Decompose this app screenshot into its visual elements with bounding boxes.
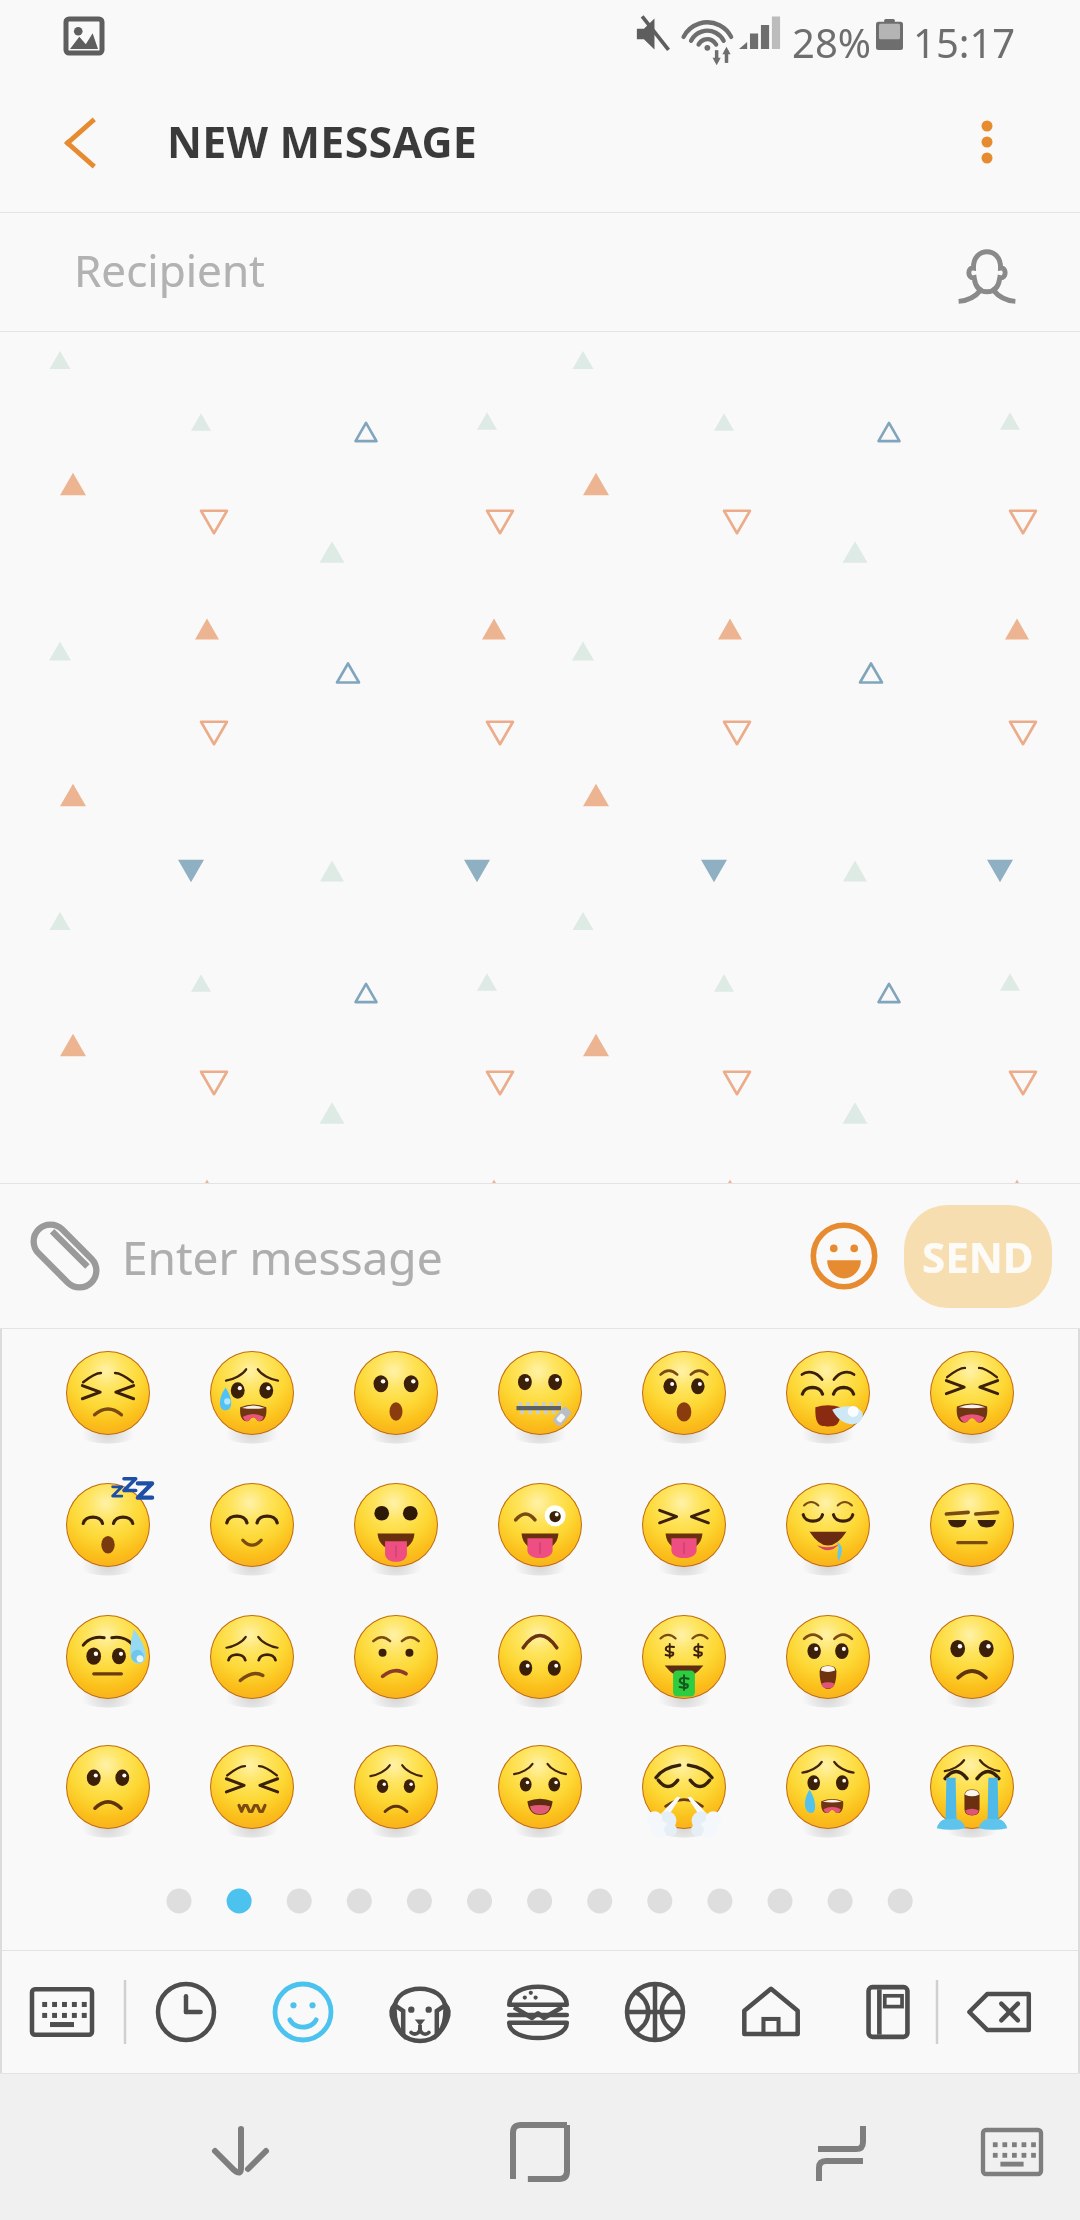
button[interactable]: Add recipient [932,217,1042,327]
button[interactable]: Emoji [926,1467,1080,1604]
button[interactable]: Emoji [310,1741,464,1878]
button[interactable]: Emoji [0,1604,155,1741]
button[interactable]: Sports [603,1963,707,2063]
button[interactable]: Hide keyboard [180,2092,300,2210]
button[interactable]: Emoji [464,1741,618,1878]
button[interactable]: Emoji [310,1329,464,1467]
button[interactable]: Emoji [772,1467,926,1604]
button[interactable]: Keyboard [10,1963,114,2063]
staticText: SEND [922,1228,1034,1285]
button[interactable]: Emoji [464,1329,618,1467]
button[interactable]: Emoji [926,1741,1080,1878]
button[interactable]: Backspace [948,1963,1052,2063]
staticText: 15:17 [913,15,1016,69]
button[interactable]: Emoji [772,1604,926,1741]
button[interactable]: Recents [780,2092,900,2210]
button[interactable]: Emoji [310,1604,464,1741]
button[interactable]: Recipient [0,213,1080,331]
button[interactable]: Emoji [618,1467,772,1604]
button[interactable]: Animals [368,1963,472,2063]
button[interactable]: Emoji keyboard [796,1208,892,1304]
button[interactable]: Back [26,88,136,198]
button[interactable]: Emoji pages [0,1878,1080,1950]
button[interactable]: Emoji [618,1741,772,1878]
staticText: 28% [792,15,871,69]
button[interactable]: Emoji [0,1467,155,1604]
button[interactable]: Symbols [836,1963,940,2063]
button[interactable]: Places [719,1963,823,2063]
button[interactable]: Emoji [155,1604,310,1741]
button[interactable]: Emoji [464,1467,618,1604]
button[interactable]: Emoji [155,1741,310,1878]
button[interactable]: Emoji [618,1329,772,1467]
staticText: NEW MESSAGE [167,112,478,171]
button[interactable]: More options [932,87,1042,197]
button[interactable]: Emoji [310,1467,464,1604]
button[interactable]: Smileys [251,1963,355,2063]
button[interactable]: Emoji [618,1604,772,1741]
button[interactable]: Keyboard [952,2092,1072,2210]
button[interactable]: Emoji [155,1467,310,1604]
button[interactable]: Attach file [10,1201,120,1311]
button[interactable]: Emoji [0,1741,155,1878]
button[interactable]: SEND [904,1205,1052,1308]
staticText: Enter message [122,1226,443,1289]
button[interactable]: Home [480,2092,600,2210]
button[interactable]: Emoji [155,1329,310,1467]
button[interactable]: Emoji [0,1329,155,1467]
button[interactable]: Emoji [926,1329,1080,1467]
button[interactable]: Food [486,1963,590,2063]
button[interactable]: Recent [134,1963,238,2063]
button[interactable]: Emoji [926,1604,1080,1741]
staticText: Recipient [74,240,265,300]
button[interactable]: Emoji [464,1604,618,1741]
button[interactable]: Emoji [772,1329,926,1467]
button[interactable]: Emoji [772,1741,926,1878]
